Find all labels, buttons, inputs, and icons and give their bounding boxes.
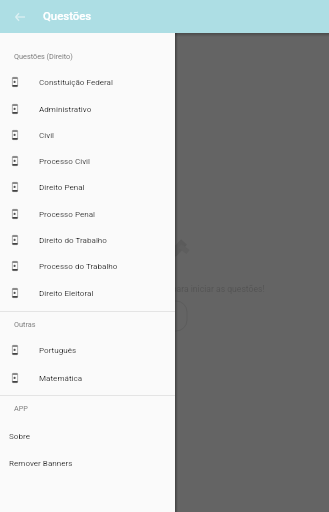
button[interactable]: Remover Banners — [0, 448, 175, 475]
staticText: Questões — [43, 9, 92, 22]
staticText: Direito Penal — [39, 182, 85, 191]
staticText: Matemática — [39, 373, 83, 382]
button[interactable]: Sobre — [0, 421, 175, 448]
staticText: Português — [39, 345, 77, 354]
button[interactable]: Direito do Trabalho — [0, 225, 175, 251]
staticText: APP — [14, 404, 28, 413]
staticText: Remover Banners — [9, 458, 73, 467]
button[interactable]: Direito Eleitoral — [0, 278, 175, 304]
button[interactable]: Back — [9, 6, 30, 27]
button[interactable]: Português — [0, 335, 175, 361]
button[interactable]: Processo Penal — [0, 199, 175, 225]
staticText: Sobre — [9, 431, 30, 440]
button[interactable]: Processo Civil — [0, 146, 175, 172]
button[interactable]: Processo do Trabalho — [0, 251, 175, 277]
staticText: Selecione uma matéria para iniciar as qu… — [82, 284, 265, 294]
staticText: Direito Eleitoral — [39, 288, 94, 297]
staticText: Direito do Trabalho — [39, 235, 107, 244]
button[interactable]: Matemática — [0, 363, 175, 389]
staticText: Constituição Federal — [39, 77, 113, 86]
staticText: Processo do Trabalho — [39, 261, 118, 270]
button[interactable]: Direito Penal — [0, 172, 175, 198]
staticText: Questões (Direito) — [14, 52, 73, 61]
button[interactable]: Administrativo — [0, 94, 175, 120]
staticText: Civil — [39, 130, 55, 139]
staticText: Processo Penal — [39, 209, 96, 218]
staticText: Outras — [14, 320, 36, 329]
button[interactable]: Constituição Federal — [0, 67, 175, 93]
staticText: Processo Civil — [39, 156, 90, 165]
staticText: Administrativo — [39, 104, 92, 113]
button[interactable]: Civil — [0, 120, 175, 146]
